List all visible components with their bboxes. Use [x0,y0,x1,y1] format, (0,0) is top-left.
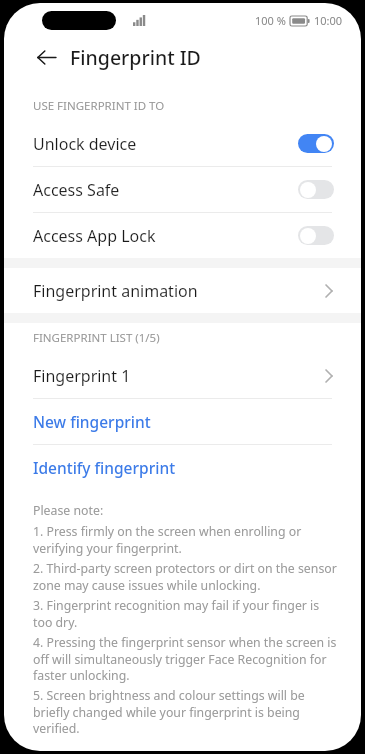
staticText: Fingerprint animation [33,280,198,302]
staticText: New fingerprint [33,411,151,432]
staticText: Unlock device [33,133,137,155]
button[interactable]: Fingerprint 1 [4,353,361,398]
button[interactable]: Access App Lock [4,213,361,258]
staticText: 10:00 [314,13,343,28]
button[interactable]: Unlock device [4,121,361,166]
staticText: FINGERPRINT LIST (1/5) [33,330,160,346]
staticText: Identify fingerprint [33,457,176,478]
staticText: Please note: [33,502,104,519]
button[interactable]: Off [298,180,334,199]
staticText: 2. Third-party screen protectors or dirt… [33,560,337,593]
staticText: Access App Lock [33,225,156,247]
staticText: 3. Fingerprint recognition may fail if y… [33,597,337,630]
button[interactable]: Off [298,226,334,245]
staticText: Access Safe [33,179,120,201]
button[interactable]: Identify fingerprint [4,445,361,490]
staticText: 100 % [255,13,286,28]
staticText: 5. Screen brightness and colour settings… [33,687,337,736]
button[interactable]: Back [26,37,66,77]
staticText: USE FINGERPRINT ID TO [33,98,165,114]
button[interactable]: On [298,134,334,153]
staticText: 1. Press firmly on the screen when enrol… [33,523,337,556]
button[interactable]: New fingerprint [4,399,361,444]
staticText: 4. Pressing the fingerprint sensor when … [33,634,337,683]
staticText: Fingerprint 1 [33,365,131,387]
staticText: Fingerprint ID [70,44,201,71]
button[interactable]: Fingerprint animation [4,268,361,313]
button[interactable]: Access Safe [4,167,361,212]
